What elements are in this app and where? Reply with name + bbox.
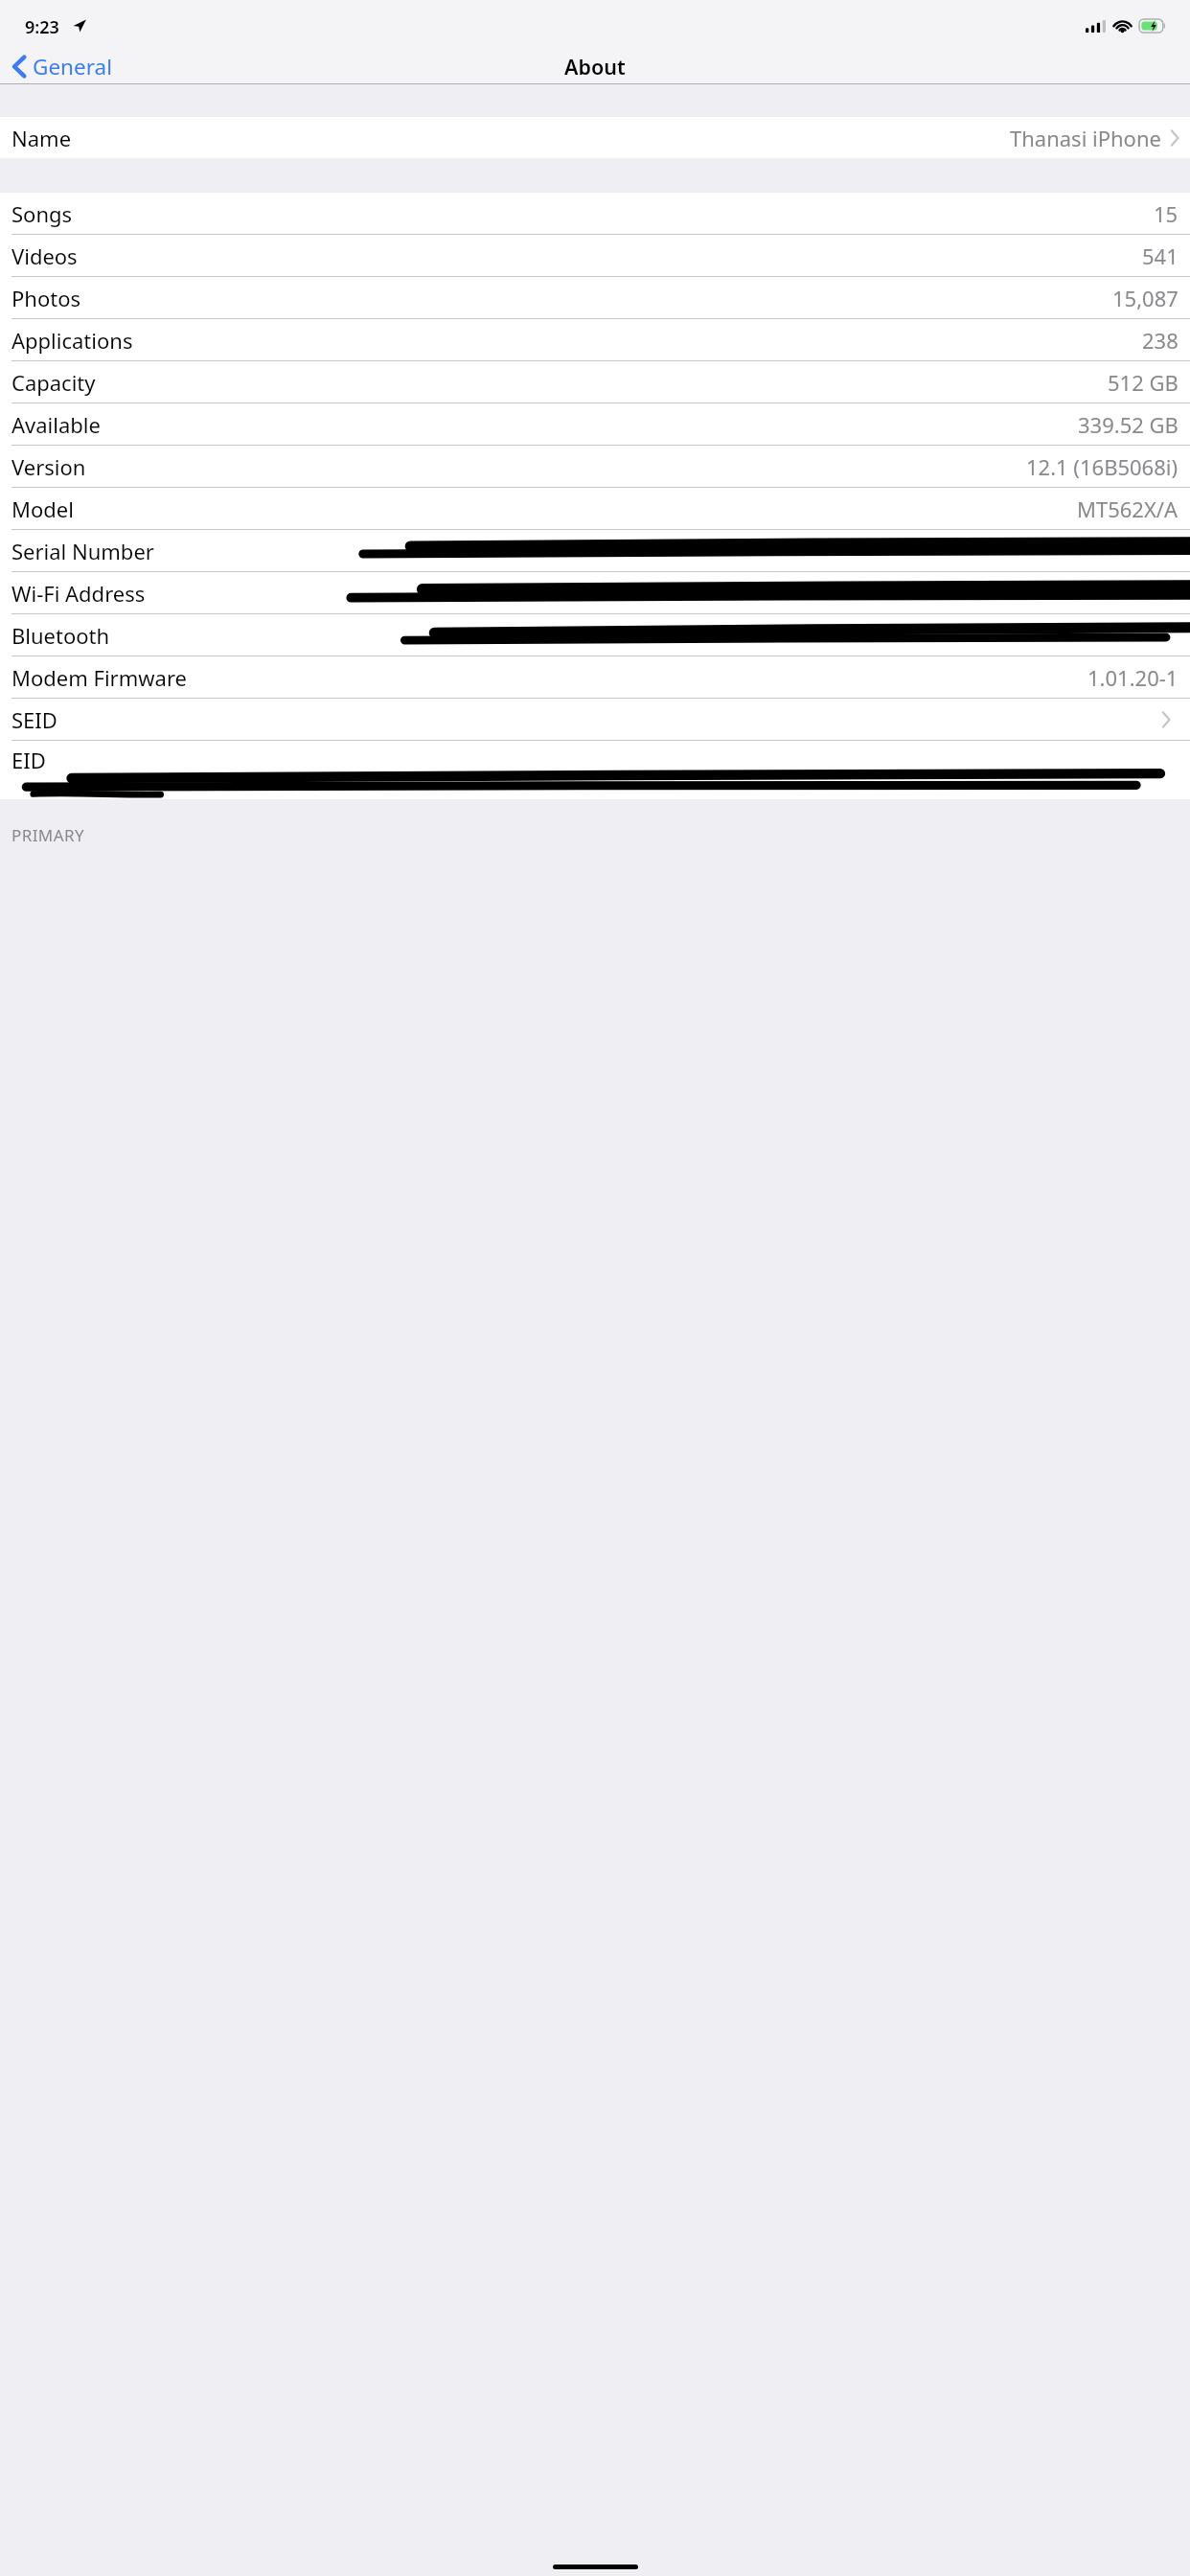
button[interactable]: Videos — [0, 235, 1190, 276]
staticText: Version — [11, 452, 86, 481]
button[interactable]: Serial Number — [0, 530, 1190, 571]
staticText: 512 GB — [1108, 368, 1179, 397]
staticText: General — [33, 52, 112, 81]
staticText: EID — [11, 746, 46, 774]
staticText: Thanasi iPhone — [1010, 124, 1161, 152]
staticText: Serial Number — [11, 537, 154, 565]
button[interactable]: SEID details — [0, 699, 1190, 740]
staticText: MT562X/A — [1077, 494, 1179, 523]
button[interactable]: Applications — [0, 319, 1190, 360]
staticText: Capacity — [11, 368, 96, 397]
button[interactable]: Modem Firmware — [0, 656, 1190, 698]
button[interactable]: EID — [0, 741, 1190, 799]
staticText: Videos — [11, 241, 78, 270]
staticText: PRIMARY — [11, 824, 84, 846]
staticText: Applications — [11, 326, 133, 355]
staticText: Modem Firmware — [11, 663, 187, 692]
staticText: 12.1 (16B5068i) — [1026, 452, 1179, 481]
staticText: 15,087 — [1112, 284, 1179, 312]
button[interactable]: Model — [0, 488, 1190, 529]
staticText: Bluetooth — [11, 621, 110, 650]
staticText: Photos — [11, 284, 81, 312]
button[interactable]: Name — [0, 117, 1190, 158]
staticText: About — [564, 53, 626, 80]
button[interactable]: Songs — [0, 193, 1190, 234]
button[interactable]: Available — [0, 403, 1190, 445]
button[interactable]: Bluetooth — [0, 614, 1190, 655]
staticText: Songs — [11, 199, 73, 228]
staticText: 541 — [1142, 241, 1179, 270]
staticText: 339.52 GB — [1078, 410, 1179, 439]
button[interactable]: Wi-Fi Address — [0, 572, 1190, 613]
button[interactable]: Photos — [0, 277, 1190, 318]
staticText: Wi-Fi Address — [11, 579, 146, 608]
button[interactable]: General — [0, 48, 126, 84]
staticText: Name — [11, 124, 72, 152]
staticText: 238 — [1142, 326, 1179, 355]
button[interactable]: Version — [0, 446, 1190, 487]
staticText: 1.01.20-1 — [1087, 663, 1179, 692]
staticText: SEID — [11, 705, 57, 734]
staticText: Model — [11, 494, 74, 523]
staticText: 15 — [1154, 199, 1179, 228]
staticText: 9:23 — [25, 15, 59, 39]
staticText: Available — [11, 410, 101, 439]
button[interactable]: Capacity — [0, 361, 1190, 402]
